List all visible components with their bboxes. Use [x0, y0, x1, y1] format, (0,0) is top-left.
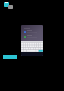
button[interactable]: App logo — [4, 2, 9, 7]
button[interactable] — [21, 25, 43, 56]
